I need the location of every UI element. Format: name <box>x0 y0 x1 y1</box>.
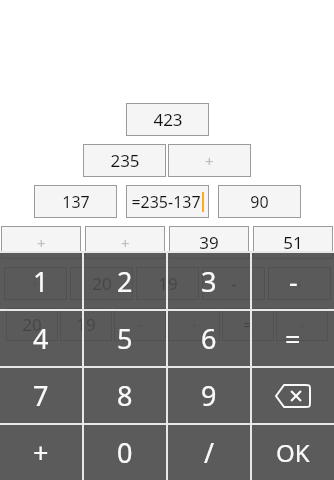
staticText: + <box>205 151 214 171</box>
button[interactable]: 20 <box>6 308 58 341</box>
staticText: 39 <box>199 231 219 254</box>
staticText: 51 <box>283 231 303 254</box>
staticText: 19 <box>76 313 96 336</box>
staticText: 8 <box>117 377 133 414</box>
button[interactable]: + <box>268 267 331 300</box>
button[interactable]: 137 <box>34 185 117 218</box>
staticText: = <box>285 320 301 357</box>
button[interactable]: 5 <box>84 311 166 366</box>
button[interactable]: + <box>168 308 220 341</box>
staticText: =235-137 <box>131 191 201 213</box>
button[interactable]: 6 <box>168 311 250 366</box>
staticText: 9 <box>201 377 217 414</box>
button[interactable]: = <box>252 311 334 366</box>
button[interactable]: 9 <box>168 368 250 423</box>
button[interactable]: 90 <box>218 185 301 218</box>
button[interactable]: 19 <box>136 267 199 300</box>
staticText: OK <box>276 436 310 469</box>
button[interactable]: 7 <box>0 368 82 423</box>
staticText: 3 <box>201 263 217 300</box>
button[interactable]: Backspace <box>252 368 334 423</box>
button[interactable]: = <box>222 308 274 341</box>
button[interactable]: 19 <box>60 308 112 341</box>
button[interactable]: =235-137 <box>126 185 209 218</box>
button[interactable]: + <box>168 144 251 177</box>
staticText: 137 <box>62 191 90 213</box>
button[interactable]: + <box>276 308 328 341</box>
staticText: 90 <box>250 191 269 213</box>
staticText: 5 <box>117 320 133 357</box>
button[interactable]: 235 <box>83 144 166 177</box>
staticText: + <box>33 434 49 471</box>
staticText: + <box>295 274 304 294</box>
staticText: 19 <box>158 272 178 295</box>
staticText: 423 <box>153 108 183 131</box>
staticText: 235 <box>110 149 140 172</box>
staticText: = <box>243 313 253 336</box>
staticText: 4 <box>33 320 49 357</box>
button[interactable]: 0 <box>84 425 166 480</box>
staticText: + <box>31 274 40 294</box>
button[interactable]: 423 <box>126 103 209 136</box>
button[interactable]: 1 <box>0 253 82 309</box>
button[interactable]: + <box>1 226 81 259</box>
button[interactable]: 2 <box>84 253 166 309</box>
button[interactable]: OK <box>252 425 334 480</box>
button[interactable]: 39 <box>169 226 249 259</box>
button[interactable]: 4 <box>0 311 82 366</box>
staticText: - <box>231 272 237 295</box>
staticText: - <box>289 263 298 300</box>
button[interactable]: 3 <box>168 253 250 309</box>
staticText: 6 <box>201 320 217 357</box>
button[interactable]: / <box>168 425 250 480</box>
staticText: + <box>121 233 130 253</box>
staticText: / <box>204 434 215 471</box>
button[interactable]: - <box>202 267 265 300</box>
staticText: + <box>37 233 46 253</box>
button[interactable]: + <box>4 267 67 300</box>
staticText: 20 <box>22 313 42 336</box>
staticText: 7 <box>33 377 49 414</box>
staticText: 0 <box>117 434 133 471</box>
button[interactable]: + <box>114 308 166 341</box>
button[interactable]: 20 <box>70 267 133 300</box>
staticText: 2 <box>117 263 133 300</box>
button[interactable]: 8 <box>84 368 166 423</box>
button[interactable]: + <box>85 226 165 259</box>
staticText: 1 <box>33 263 49 300</box>
staticText: 20 <box>92 272 112 295</box>
button[interactable]: + <box>0 425 82 480</box>
button[interactable]: - <box>252 253 334 309</box>
button[interactable]: 51 <box>253 226 333 259</box>
